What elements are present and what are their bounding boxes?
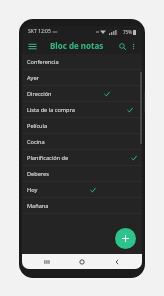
staticText: Dirección	[27, 90, 52, 98]
staticText: Película	[27, 122, 48, 130]
button[interactable]: Mañana	[22, 198, 142, 214]
staticText: Hoy	[27, 186, 38, 194]
button[interactable]: Menu	[26, 40, 38, 52]
button[interactable]: Recents	[37, 254, 57, 269]
button[interactable]: Hoy	[22, 182, 142, 198]
button[interactable]: Home	[72, 254, 92, 269]
staticText: Mañana	[27, 202, 49, 210]
button[interactable]: Ayer	[22, 70, 142, 86]
button[interactable]: Dirección	[22, 86, 142, 102]
button[interactable]: Search	[116, 40, 128, 52]
button[interactable]: Add note	[115, 228, 136, 249]
staticText: Cocina	[27, 138, 45, 146]
staticText: Ayer	[27, 74, 39, 82]
button[interactable]: Conferencia	[22, 54, 142, 70]
button[interactable]: Deberes	[22, 166, 142, 182]
staticText: SKT 12:05	[28, 28, 51, 35]
staticText: Lista de la compra	[27, 106, 75, 114]
staticText: Planificación de viajes	[27, 154, 79, 162]
button[interactable]: Back	[107, 254, 127, 269]
staticText: Bloc de notas	[50, 40, 104, 51]
button[interactable]: More options	[128, 41, 138, 51]
staticText: 75%	[123, 29, 132, 35]
button[interactable]: Lista de la compra	[22, 102, 142, 118]
staticText: Deberes	[27, 170, 49, 178]
button[interactable]: Planificación de viajes	[22, 150, 142, 166]
button[interactable]: Película	[22, 118, 142, 134]
button[interactable]: Cocina	[22, 134, 142, 150]
staticText: Conferencia	[27, 58, 59, 66]
